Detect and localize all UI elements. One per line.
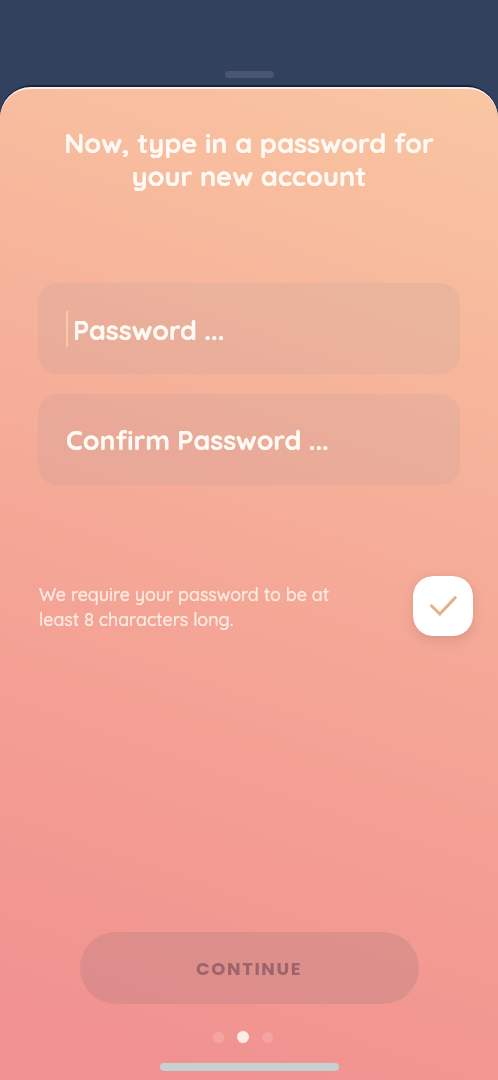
button[interactable]: Confirm Password ... xyxy=(38,394,460,485)
button[interactable]: CONTINUE xyxy=(80,932,419,1004)
button[interactable]: Password requirement met xyxy=(413,576,473,636)
staticText: We require your password to be at least … xyxy=(39,583,413,630)
staticText: CONTINUE xyxy=(196,956,303,981)
staticText: Password ... xyxy=(73,313,225,346)
staticText: Confirm Password ... xyxy=(66,423,329,456)
staticText: Now, type in a password for your new acc… xyxy=(20,126,478,193)
button[interactable]: Password ... xyxy=(38,283,460,374)
